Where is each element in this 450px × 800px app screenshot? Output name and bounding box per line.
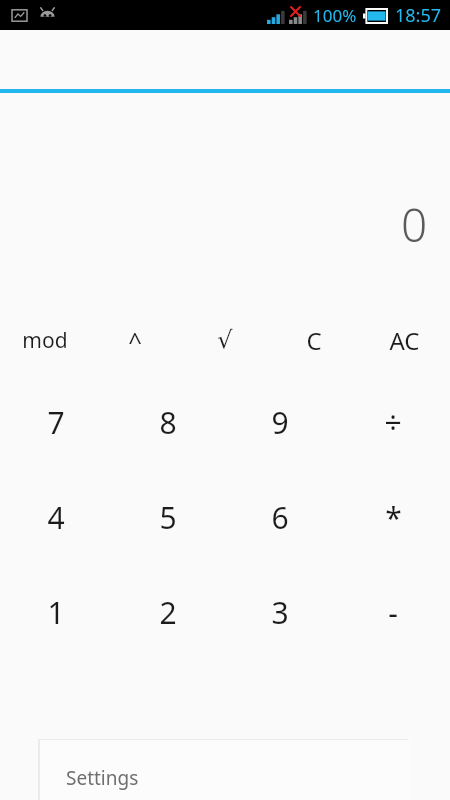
- staticText: ÷: [384, 402, 402, 443]
- button[interactable]: 4: [0, 470, 112, 565]
- button[interactable]: -: [337, 565, 449, 660]
- staticText: C: [306, 324, 322, 357]
- button[interactable]: ÷: [337, 375, 449, 470]
- staticText: 7: [47, 402, 65, 443]
- staticText: 6: [271, 497, 289, 538]
- button[interactable]: 8: [112, 375, 224, 470]
- staticText: 100%: [313, 4, 357, 27]
- staticText: 1: [47, 592, 65, 633]
- button[interactable]: 2: [112, 565, 224, 660]
- staticText: Settings: [66, 765, 139, 791]
- button[interactable]: Settings: [40, 740, 410, 800]
- button[interactable]: 3: [224, 565, 336, 660]
- button[interactable]: ^: [90, 305, 180, 375]
- button[interactable]: AC: [359, 305, 449, 375]
- staticText: 9: [271, 402, 289, 443]
- staticText: 4: [47, 497, 65, 538]
- staticText: 3: [271, 592, 289, 633]
- staticText: 18:57: [395, 3, 442, 28]
- staticText: AC: [389, 324, 420, 357]
- staticText: 8: [159, 402, 177, 443]
- button[interactable]: *: [337, 470, 449, 565]
- button[interactable]: 9: [224, 375, 336, 470]
- staticText: -: [388, 592, 398, 633]
- staticText: *: [385, 497, 402, 538]
- staticText: ^: [128, 324, 142, 357]
- staticText: 5: [159, 497, 177, 538]
- button[interactable]: mod: [0, 305, 90, 375]
- button[interactable]: C: [269, 305, 359, 375]
- button[interactable]: √: [180, 305, 270, 375]
- button[interactable]: 5: [112, 470, 224, 565]
- button[interactable]: 6: [224, 470, 336, 565]
- staticText: √: [217, 326, 233, 354]
- staticText: mod: [22, 326, 68, 355]
- staticText: 2: [159, 592, 177, 633]
- button[interactable]: 1: [0, 565, 112, 660]
- staticText: 0: [401, 193, 428, 256]
- button[interactable]: 7: [0, 375, 112, 470]
